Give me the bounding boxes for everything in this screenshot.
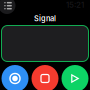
staticText: 15:21 <box>66 0 84 10</box>
button[interactable]: Stop <box>31 65 58 90</box>
button[interactable]: Menu <box>0 0 15 14</box>
button[interactable]: Record <box>1 65 28 90</box>
staticText: Signal <box>34 14 56 23</box>
button[interactable]: Play <box>61 65 88 90</box>
